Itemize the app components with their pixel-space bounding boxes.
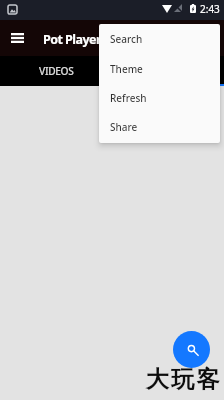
button[interactable]: Theme bbox=[99, 54, 220, 83]
button[interactable]: Search bbox=[173, 331, 210, 368]
staticText: 2:43 bbox=[200, 2, 220, 16]
staticText: Theme bbox=[110, 62, 143, 76]
staticText: Share bbox=[110, 120, 138, 134]
button[interactable]: Open navigation menu bbox=[1, 22, 33, 54]
button[interactable]: Refresh bbox=[99, 83, 220, 112]
button[interactable]: MUSIC bbox=[112, 56, 224, 86]
staticText: Refresh bbox=[110, 91, 147, 105]
button[interactable]: VIDEOS bbox=[0, 56, 112, 86]
staticText: Search bbox=[110, 32, 143, 46]
button[interactable]: Search bbox=[99, 24, 220, 54]
staticText: 大玩客 bbox=[146, 365, 222, 394]
button[interactable]: Share bbox=[99, 112, 220, 141]
staticText: VIDEOS bbox=[39, 64, 74, 78]
staticText: Pot Player bbox=[43, 31, 101, 48]
